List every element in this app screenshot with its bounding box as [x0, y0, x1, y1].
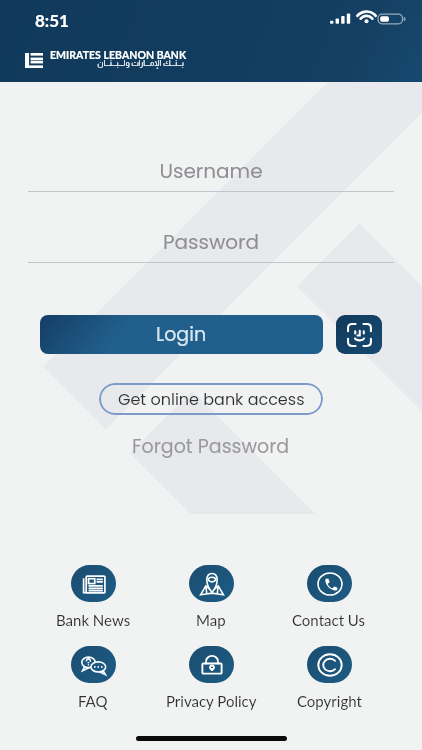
button[interactable]: FAQ: [34, 646, 152, 710]
button[interactable]: Forgot Password: [0, 432, 422, 460]
staticText: Privacy Policy: [166, 692, 257, 710]
staticText: Copyright: [297, 692, 362, 710]
staticText: EMIRATES LEBANON BANK: [50, 49, 187, 62]
button[interactable]: Copyright: [270, 646, 388, 710]
staticText: Username: [28, 157, 394, 185]
staticText: Get online bank access: [118, 388, 305, 410]
staticText: Login: [156, 321, 207, 348]
button[interactable]: Bank News: [34, 565, 152, 629]
staticText: Password: [28, 228, 394, 256]
staticText: 8:51: [35, 10, 69, 30]
button[interactable]: Privacy Policy: [152, 646, 270, 710]
button[interactable]: Username: [28, 157, 394, 192]
staticText: Map: [196, 611, 226, 629]
button[interactable]: Password: [28, 228, 394, 263]
button[interactable]: Get online bank access: [99, 383, 323, 415]
staticText: Forgot Password: [132, 433, 290, 460]
staticText: FAQ: [78, 692, 108, 710]
button[interactable]: Login: [40, 315, 323, 354]
button[interactable]: Contact Us: [270, 565, 388, 629]
button[interactable]: Map: [152, 565, 270, 629]
staticText: بـــنـــك الإمـــارات ولـــبـــنـــان: [50, 59, 184, 68]
button[interactable]: Sign in with Face ID: [336, 315, 382, 354]
staticText: Contact Us: [292, 611, 366, 629]
staticText: Bank News: [56, 611, 131, 629]
